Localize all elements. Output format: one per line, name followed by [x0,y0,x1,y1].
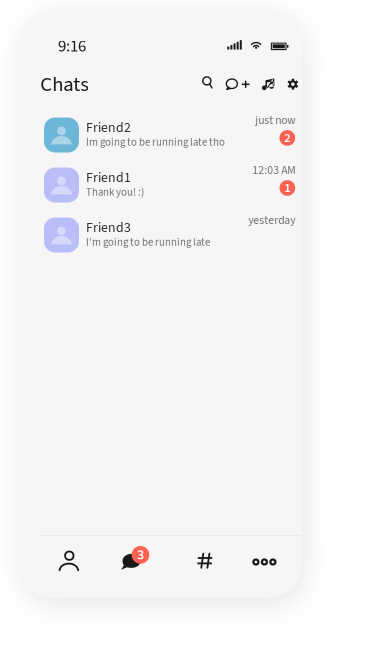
button[interactable]: Profile [19,9,302,571]
button[interactable]: Chats [19,9,302,570]
staticText: 1 [284,179,290,197]
staticText: 9:16 [58,34,86,58]
staticText: I'm going to be running late [86,235,210,250]
button[interactable]: Search [19,9,302,89]
button[interactable]: Settings [19,9,302,90]
staticText: 2 [284,129,290,147]
staticText: Friend3 [86,218,131,238]
staticText: just now [255,112,295,129]
staticText: Chats [40,70,89,99]
button[interactable]: Friend1 [44,160,295,210]
button[interactable]: Channels [19,9,302,569]
staticText: yesterday [248,212,295,229]
button[interactable]: Friend3 [44,210,295,260]
button[interactable]: New chat [19,9,302,90]
staticText: Thank you! :) [86,185,144,200]
button[interactable]: Music [19,9,302,90]
staticText: Friend1 [86,168,131,188]
staticText: 3 [137,545,144,565]
staticText: Im going to be running late tho [86,135,225,150]
button[interactable]: Friend2 [44,110,295,160]
staticText: Friend2 [86,118,131,138]
staticText: 12:03 AM [252,162,295,179]
button[interactable]: More [19,9,302,566]
